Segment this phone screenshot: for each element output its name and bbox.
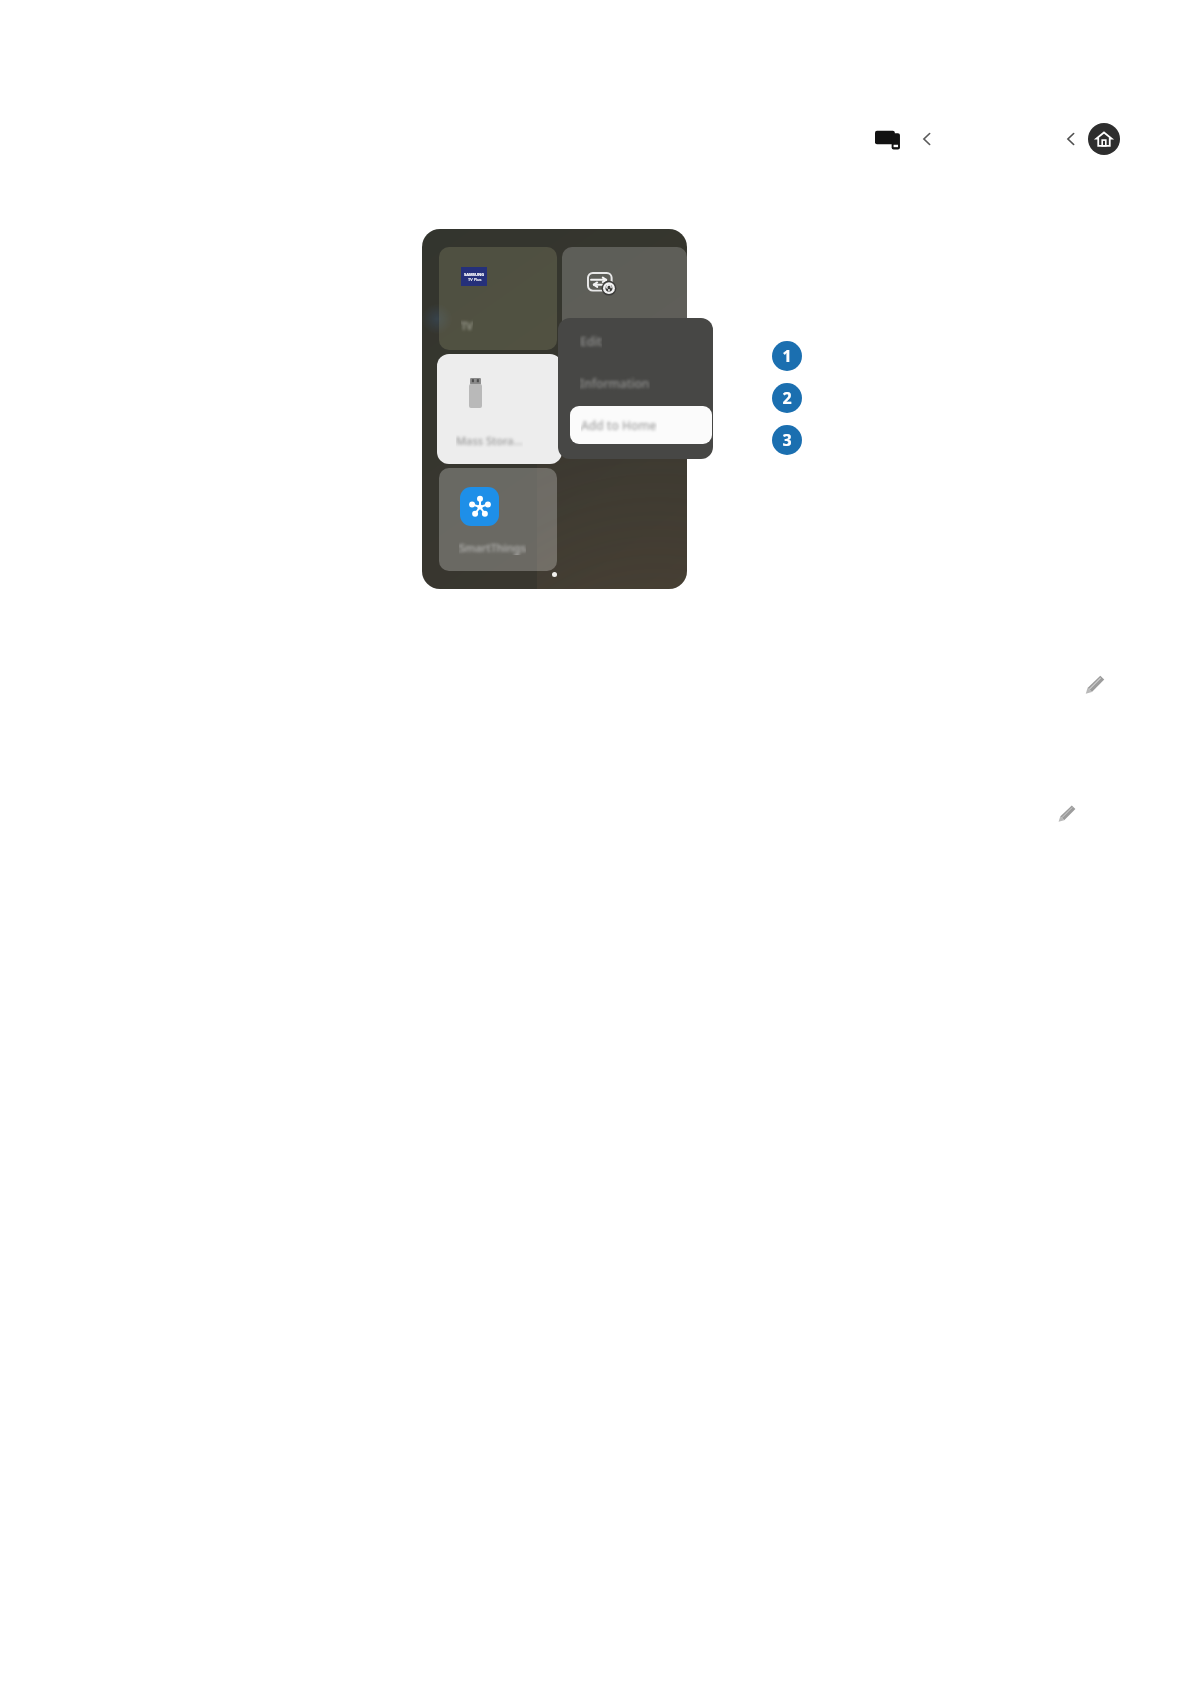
button[interactable]: Devices <box>875 127 907 151</box>
button[interactable]: Edit <box>1057 803 1077 823</box>
button[interactable]: Add to Home <box>570 406 712 444</box>
staticText: SmartThings <box>459 540 526 555</box>
button[interactable]: SmartThings <box>439 468 557 571</box>
staticText: 3 <box>782 429 792 451</box>
button[interactable]: SAMSUNG <box>439 247 557 350</box>
button[interactable]: 3 <box>772 425 802 455</box>
button[interactable]: 1 <box>772 341 802 371</box>
button[interactable]: Mass Stora... <box>437 354 562 464</box>
staticText: SAMSUNG <box>464 272 485 277</box>
staticText: TV Plus <box>468 277 482 282</box>
button[interactable]: Back <box>916 128 938 150</box>
staticText: 1 <box>782 345 792 367</box>
staticText: Mass Stora... <box>456 433 523 448</box>
staticText: Information <box>580 375 650 391</box>
staticText: TV <box>461 319 473 333</box>
staticText: Add to Home <box>581 417 657 433</box>
button[interactable]: 2 <box>772 383 802 413</box>
staticText: 2 <box>782 387 792 409</box>
button[interactable]: Edit <box>1084 673 1106 695</box>
button[interactable]: Back <box>1060 128 1082 150</box>
staticText: Edit <box>580 333 602 349</box>
button[interactable]: Home <box>1088 123 1120 155</box>
button[interactable]: Source <box>562 247 687 350</box>
